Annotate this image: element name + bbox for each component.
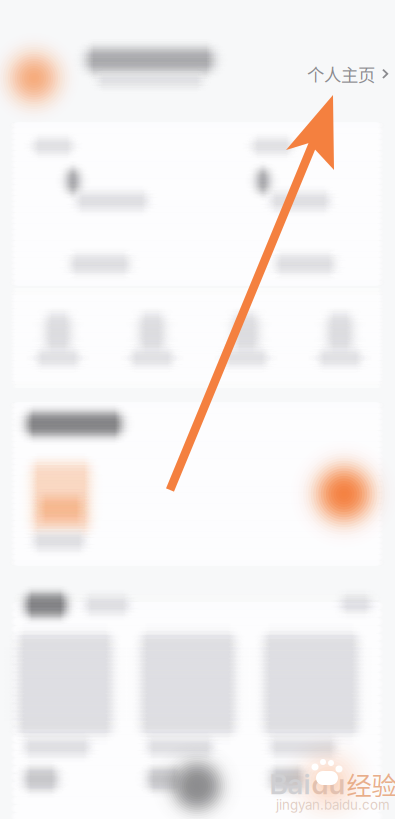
staticText: jingyan.baidu.com xyxy=(276,797,390,813)
button[interactable]: Product xyxy=(251,628,371,808)
button[interactable]: Quick action xyxy=(105,294,199,386)
button[interactable]: Quick action xyxy=(293,294,387,386)
button[interactable]: Quick action xyxy=(11,294,105,386)
staticText: du xyxy=(311,767,345,801)
button[interactable]: 个人主页 xyxy=(298,52,395,96)
staticText: 个人主页 xyxy=(307,61,375,87)
staticText: Bai xyxy=(269,767,310,801)
button[interactable]: Product xyxy=(128,628,248,808)
button[interactable]: Product xyxy=(5,628,125,808)
staticText: 经验 xyxy=(346,766,395,802)
button[interactable]: Quick action xyxy=(199,294,293,386)
